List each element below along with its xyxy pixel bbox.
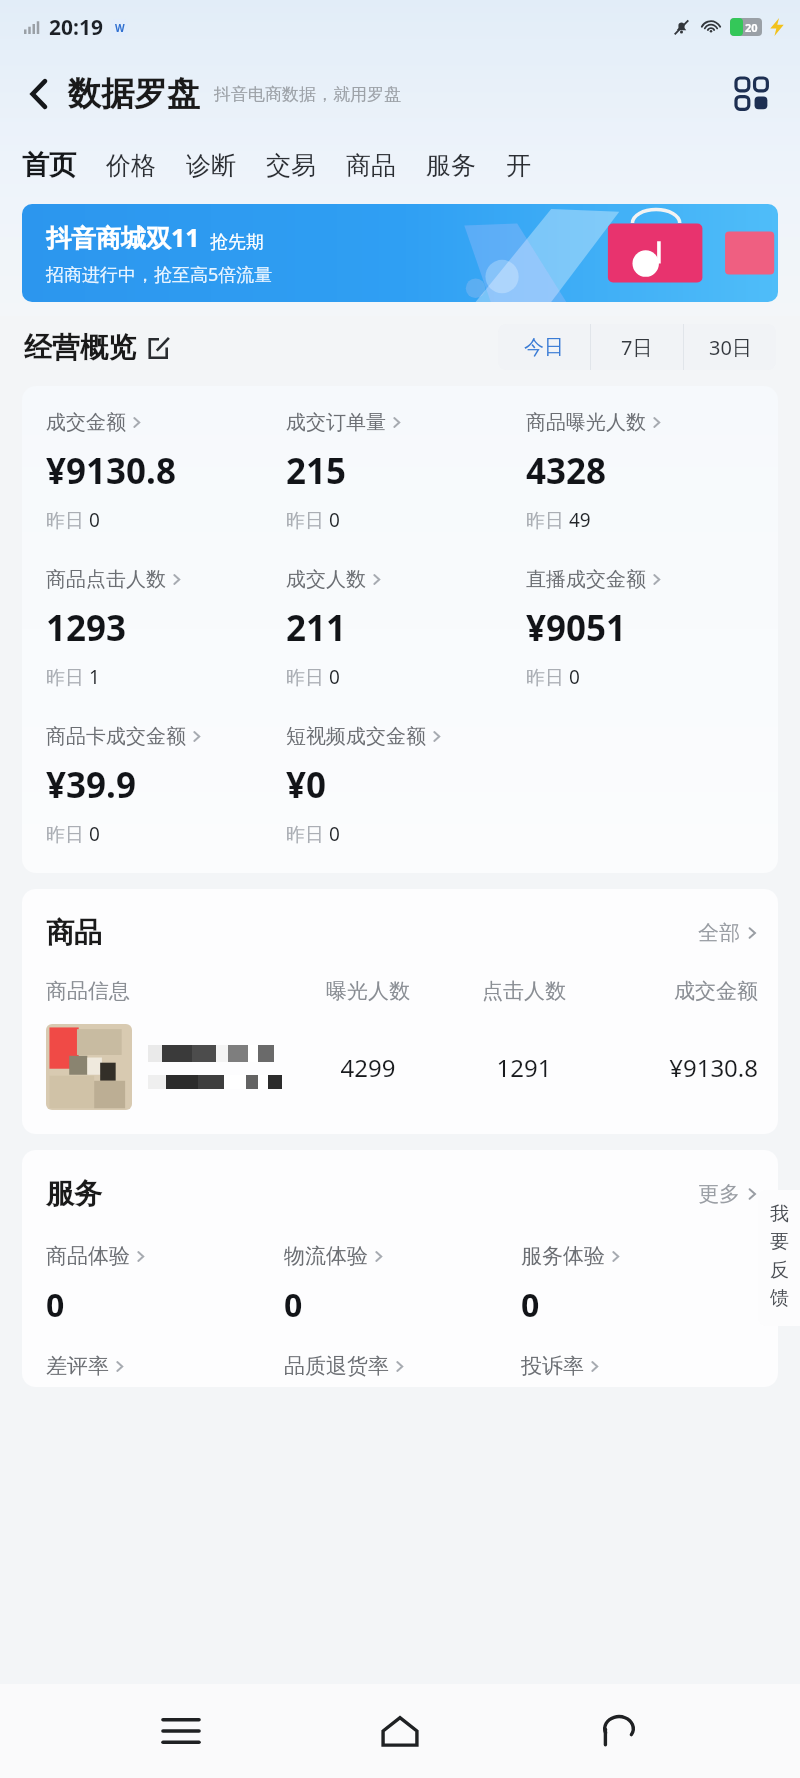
staticText: ¥39.9 <box>46 761 136 809</box>
button[interactable]: 成交金额 <box>46 410 142 435</box>
staticText: 更多 <box>698 1181 740 1207</box>
staticText: 物流体验 <box>284 1243 368 1269</box>
staticText: ¥0 <box>286 761 327 809</box>
button[interactable]: 抖音商城双11 <box>22 204 778 302</box>
staticText: 昨日 <box>46 821 89 847</box>
staticText: 抖音商城双11 <box>46 220 200 254</box>
staticText: 商品卡成交金额 <box>46 724 186 749</box>
button[interactable]: Back <box>581 1693 657 1769</box>
staticText: 全部 <box>698 920 740 946</box>
button[interactable]: Recents <box>143 1693 219 1769</box>
staticText: 招商进行中，抢至高5倍流量 <box>46 262 273 287</box>
staticText: 商品 <box>46 915 102 950</box>
staticText: 20 <box>745 20 758 35</box>
button[interactable]: 今日 <box>498 324 590 370</box>
staticText: 1293 <box>46 604 127 652</box>
button[interactable]: 直播成交金额 <box>526 567 662 592</box>
staticText: 曝光人数 <box>290 978 446 1004</box>
staticText: 服务 <box>426 150 476 181</box>
button[interactable]: 成交订单量 <box>286 410 402 435</box>
staticText: 服务 <box>46 1176 102 1211</box>
staticText: 首页 <box>22 148 76 182</box>
staticText: 数据罗盘 <box>68 73 200 115</box>
staticText: 7日 <box>621 334 653 361</box>
staticText: ¥9051 <box>526 604 627 652</box>
button[interactable]: 服务 <box>426 150 476 181</box>
staticText: 0 <box>329 507 340 533</box>
staticText: 昨日 <box>526 507 569 533</box>
staticText: 成交人数 <box>286 567 366 592</box>
staticText: 昨日 <box>46 664 89 690</box>
staticText: 短视频成交金额 <box>286 724 426 749</box>
button[interactable]: 商品点击人数 <box>46 567 182 592</box>
button[interactable]: 商品体验 <box>46 1243 146 1269</box>
staticText: 点击人数 <box>446 978 602 1004</box>
staticText: 商品曝光人数 <box>526 410 646 435</box>
button[interactable]: 物流体验 <box>284 1243 384 1269</box>
button[interactable]: Back <box>16 71 62 117</box>
button[interactable]: 商品曝光人数 <box>526 410 662 435</box>
staticText: 商品体验 <box>46 1243 130 1269</box>
staticText: 商品 <box>346 150 396 181</box>
staticText: 抢先期 <box>210 231 264 254</box>
button[interactable]: 交易 <box>266 150 316 181</box>
staticText: 昨日 <box>286 821 329 847</box>
button[interactable]: 更多 <box>698 1181 758 1207</box>
staticText: ¥9130.8 <box>602 1051 758 1084</box>
staticText: 0 <box>329 664 340 690</box>
staticText: W <box>115 21 125 35</box>
staticText: 昨日 <box>526 664 569 690</box>
button[interactable]: 全部 <box>698 920 758 946</box>
staticText: 1291 <box>446 1051 602 1084</box>
staticText: 服务体验 <box>521 1243 605 1269</box>
staticText: 交易 <box>266 150 316 181</box>
staticText: 30日 <box>709 334 752 361</box>
button[interactable]: 我 <box>758 1202 800 1314</box>
staticText: 0 <box>569 664 580 690</box>
staticText: 0 <box>329 821 340 847</box>
button[interactable]: 诊断 <box>186 150 236 181</box>
button[interactable]: 投诉率 <box>521 1353 758 1379</box>
staticText: 成交订单量 <box>286 410 386 435</box>
button[interactable]: Apps grid <box>728 70 776 118</box>
staticText: 我 <box>770 1202 789 1226</box>
button[interactable]: 商品 <box>346 150 396 181</box>
staticText: 直播成交金额 <box>526 567 646 592</box>
button[interactable]: 首页 <box>22 148 76 182</box>
staticText: 0 <box>46 1283 65 1327</box>
button[interactable]: 开 <box>506 150 531 181</box>
staticText: 1 <box>89 664 100 690</box>
staticText: ¥9130.8 <box>46 447 176 495</box>
button[interactable]: 7日 <box>591 324 683 370</box>
staticText: 馈 <box>770 1286 789 1310</box>
staticText: 20:19 <box>49 13 103 42</box>
button[interactable]: 30日 <box>684 324 776 370</box>
staticText: 昨日 <box>46 507 89 533</box>
staticText: 0 <box>89 507 100 533</box>
staticText: 诊断 <box>186 150 236 181</box>
button[interactable]: Home <box>362 1693 438 1769</box>
staticText: 成交金额 <box>602 978 758 1004</box>
button[interactable]: 经营概览 <box>24 330 170 365</box>
staticText: 商品点击人数 <box>46 567 166 592</box>
button[interactable]: 成交人数 <box>286 567 382 592</box>
staticText: 品质退货率 <box>284 1353 389 1379</box>
staticText: 昨日 <box>286 664 329 690</box>
staticText: 价格 <box>106 150 156 181</box>
button[interactable]: 服务体验 <box>521 1243 621 1269</box>
button[interactable]: 差评率 <box>46 1353 284 1379</box>
staticText: 开 <box>506 150 531 181</box>
staticText: 差评率 <box>46 1353 109 1379</box>
staticText: 4299 <box>290 1051 446 1084</box>
staticText: 49 <box>569 507 591 533</box>
button[interactable]: 商品卡成交金额 <box>46 724 202 749</box>
staticText: 4328 <box>526 447 607 495</box>
button[interactable]: 4299 <box>46 1024 758 1110</box>
staticText: 要 <box>770 1230 789 1254</box>
button[interactable]: 品质退货率 <box>284 1353 521 1379</box>
staticText: 经营概览 <box>24 330 136 365</box>
staticText: 今日 <box>524 335 564 360</box>
button[interactable]: 价格 <box>106 150 156 181</box>
button[interactable]: 短视频成交金额 <box>286 724 442 749</box>
staticText: 0 <box>284 1283 303 1327</box>
